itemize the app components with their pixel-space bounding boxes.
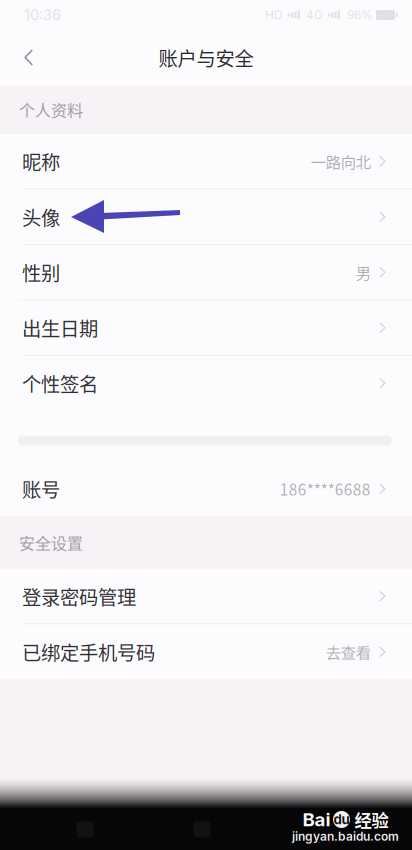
staticText: 已绑定手机号码	[22, 638, 155, 666]
button[interactable]: 已绑定手机号码	[0, 624, 412, 679]
button[interactable]: Back	[0, 30, 58, 85]
button[interactable]: Home	[172, 810, 232, 848]
staticText: 安全设置	[19, 531, 83, 554]
button[interactable]: 个性签名	[0, 356, 412, 410]
staticText: 个性签名	[22, 369, 98, 397]
staticText: 昵称	[22, 147, 60, 175]
button[interactable]: 头像	[0, 189, 412, 244]
staticText: 10:36	[24, 6, 61, 24]
staticText: 账户与安全	[158, 43, 253, 71]
staticText: 96%	[347, 8, 373, 22]
button[interactable]: 性别	[0, 245, 412, 299]
staticText: 186****6688	[280, 478, 371, 500]
staticText: 登录密码管理	[22, 582, 136, 610]
button[interactable]: 账号	[0, 461, 412, 516]
staticText: 个人资料	[19, 98, 83, 121]
staticText: 一路向北	[311, 150, 371, 172]
staticText: 出生日期	[22, 314, 98, 342]
button[interactable]: 登录密码管理	[0, 569, 412, 623]
button[interactable]: 昵称	[0, 134, 412, 188]
staticText: du	[333, 811, 349, 827]
staticText: 头像	[22, 203, 60, 231]
staticText: 男	[356, 261, 371, 283]
staticText: jingyan.baidu.com	[292, 829, 399, 844]
staticText: 4G	[306, 8, 323, 22]
staticText: 性别	[22, 258, 60, 286]
staticText: 去查看	[326, 641, 371, 663]
staticText: 经验	[354, 807, 388, 832]
staticText: 账号	[22, 475, 60, 503]
staticText: Bai	[302, 808, 330, 831]
staticText: HD	[265, 8, 283, 22]
button[interactable]: Recents	[55, 810, 115, 848]
button[interactable]: 出生日期	[0, 300, 412, 355]
